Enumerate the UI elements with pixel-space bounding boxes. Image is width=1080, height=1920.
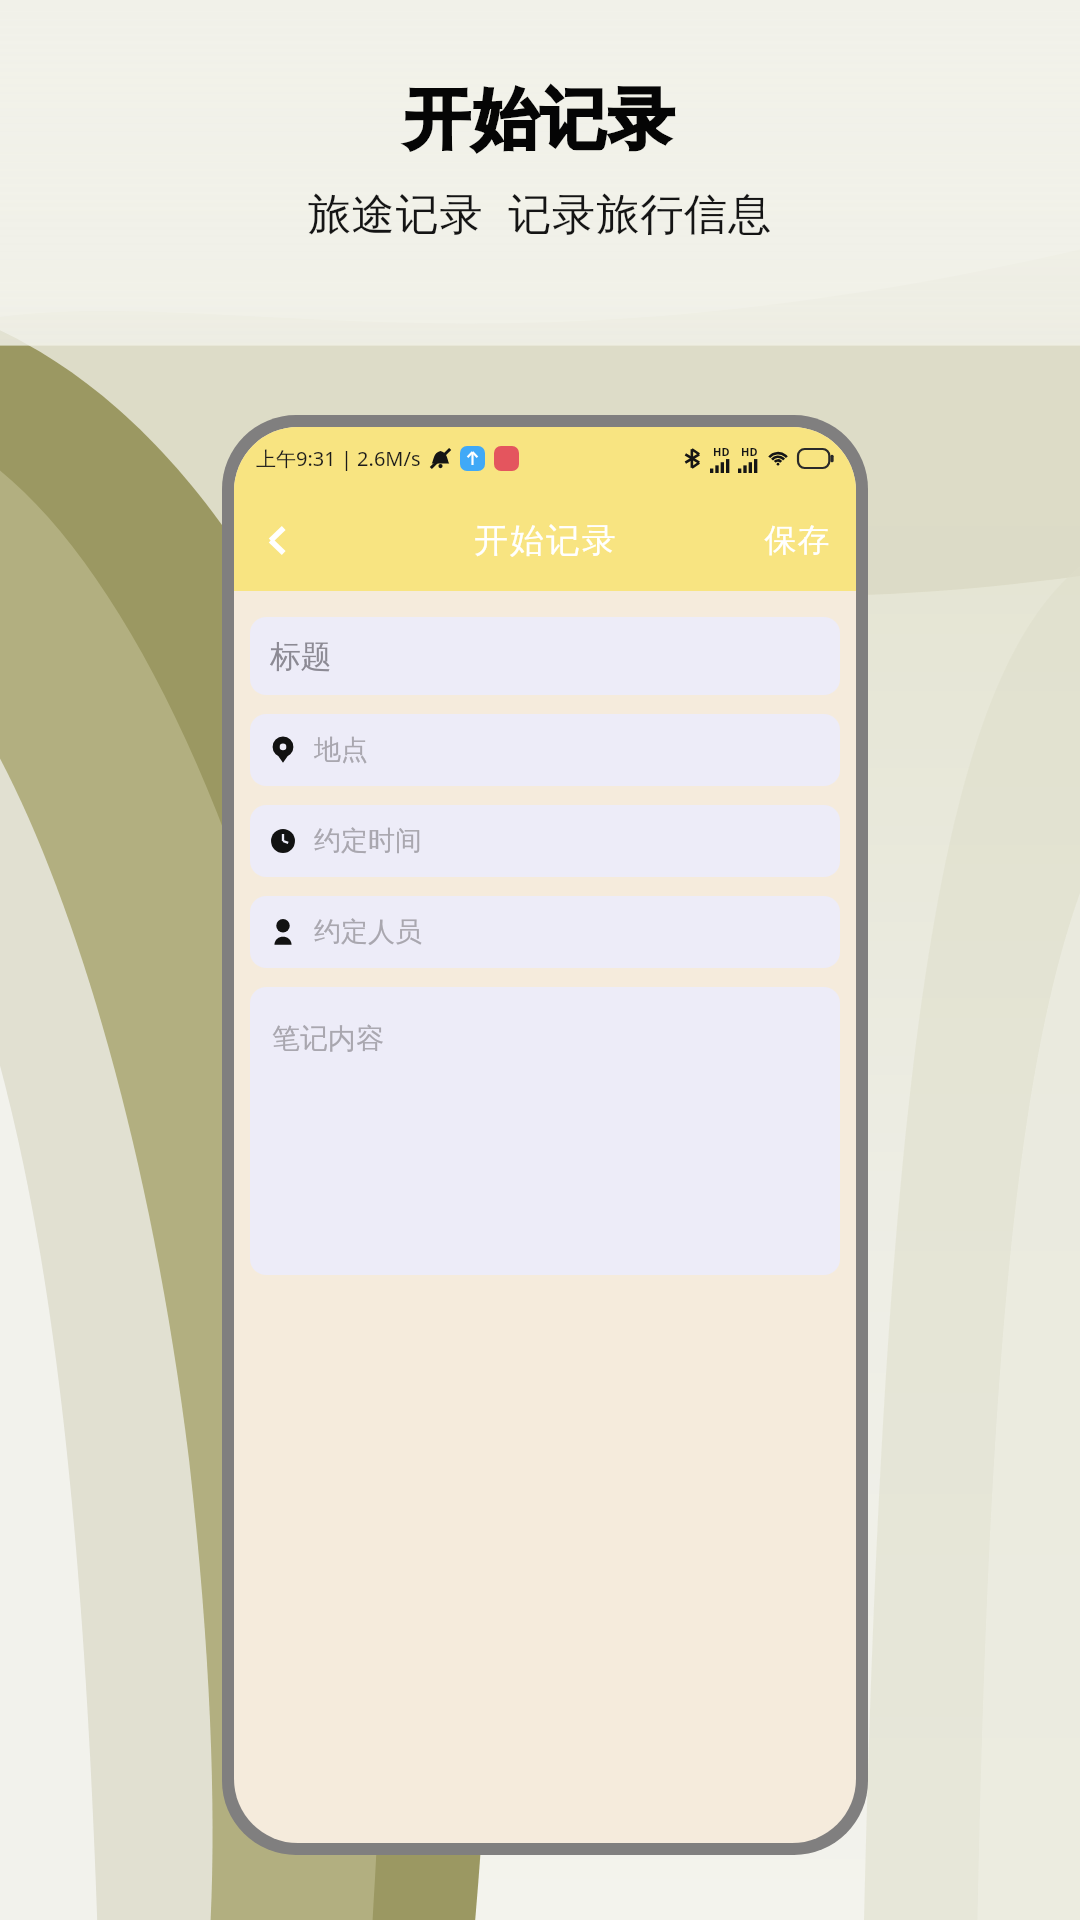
button[interactable]: 保存 [738, 504, 856, 576]
staticText: 笔记内容 [272, 1021, 384, 1056]
button[interactable]: 地点 [250, 714, 840, 786]
button[interactable]: 约定时间 [250, 805, 840, 877]
staticText: HD [741, 444, 758, 459]
button[interactable]: 约定人员 [250, 896, 840, 968]
staticText: 开始记录 [473, 519, 617, 562]
staticText: 保存 [764, 520, 830, 560]
button[interactable]: 标题 [250, 617, 840, 695]
staticText: 标题 [270, 637, 332, 676]
staticText: 约定时间 [314, 824, 422, 858]
staticText: 开始记录 [0, 78, 1080, 161]
staticText: 地点 [314, 733, 368, 767]
staticText: 旅途记录 记录旅行信息 [0, 183, 1080, 242]
button[interactable]: Back [248, 511, 306, 569]
staticText: 上午9:31 | 2.6M/s [256, 445, 421, 472]
button[interactable]: 笔记内容 [250, 987, 840, 1275]
staticText: HD [713, 444, 730, 459]
staticText: 约定人员 [314, 915, 422, 949]
